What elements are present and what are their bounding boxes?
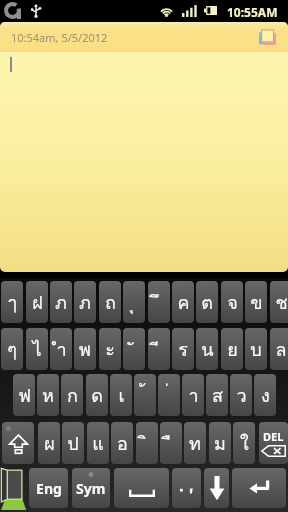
button[interactable]: ้ xyxy=(134,374,156,416)
staticText: Sym xyxy=(76,479,106,498)
button[interactable]: ะ xyxy=(99,328,121,370)
button[interactable]: ฝ xyxy=(26,281,48,323)
button[interactable]: Notes list xyxy=(259,30,276,45)
staticText: ถ xyxy=(105,288,116,317)
staticText: ป xyxy=(67,429,79,458)
button[interactable]: ฟ xyxy=(13,374,35,416)
staticText: ย xyxy=(227,335,238,364)
button[interactable]: ไ xyxy=(26,328,48,370)
button[interactable]: า xyxy=(182,374,204,416)
button[interactable]: ป xyxy=(62,422,84,464)
staticText: DEL xyxy=(263,429,284,444)
staticText: ำ xyxy=(56,335,67,364)
button[interactable]: Period and comma xyxy=(172,468,201,508)
staticText: า xyxy=(188,381,199,410)
staticText: ะ xyxy=(105,335,115,364)
staticText: ด xyxy=(91,381,103,410)
button[interactable]: ช xyxy=(270,281,288,323)
button[interactable]: Eng xyxy=(29,468,68,508)
staticText: ผ xyxy=(44,429,55,458)
button[interactable]: พ xyxy=(74,328,96,370)
button[interactable]: เ xyxy=(110,374,132,416)
staticText: แ xyxy=(92,429,104,458)
button[interactable]: Shift xyxy=(2,422,34,464)
button[interactable]: Space xyxy=(114,468,169,508)
staticText: ๅ xyxy=(8,288,17,317)
button[interactable]: ว xyxy=(230,374,252,416)
staticText: ฝ xyxy=(32,288,43,317)
button[interactable]: ร xyxy=(172,328,194,370)
staticText: ล xyxy=(275,335,287,364)
button[interactable]: น xyxy=(196,328,218,370)
staticText: ท xyxy=(189,429,201,458)
button[interactable]: ม xyxy=(209,422,231,464)
button[interactable]: ภ xyxy=(74,281,96,323)
staticText: ช xyxy=(275,288,288,317)
button[interactable]: Delete xyxy=(259,422,288,464)
button[interactable]: ่ xyxy=(158,374,180,416)
button[interactable]: ั xyxy=(123,328,145,370)
staticText: จ xyxy=(227,288,238,317)
staticText: น xyxy=(201,335,214,364)
button[interactable]: ง xyxy=(254,374,276,416)
button[interactable]: ย xyxy=(221,328,243,370)
button[interactable]: Sym xyxy=(72,468,110,508)
button[interactable]: ๅ xyxy=(1,281,23,323)
staticText: ส xyxy=(212,381,223,410)
staticText: ไ xyxy=(32,335,42,364)
button[interactable]: ส xyxy=(206,374,228,416)
button[interactable]: ถ xyxy=(99,281,121,323)
button[interactable]: ๆ xyxy=(1,328,23,370)
button[interactable]: ภ xyxy=(50,281,72,323)
staticText: ร xyxy=(178,335,188,364)
button[interactable]: ิ xyxy=(136,422,158,464)
staticText: ฟ xyxy=(18,381,31,410)
staticText: ม xyxy=(214,429,226,458)
staticText: พ xyxy=(79,335,91,364)
staticText: ง xyxy=(261,381,270,410)
staticText: 10:55AM xyxy=(227,4,278,20)
staticText: ห xyxy=(42,381,54,410)
button[interactable]: ข xyxy=(245,281,267,323)
staticText: ว xyxy=(236,381,247,410)
button[interactable]: ห xyxy=(37,374,59,416)
button[interactable]: Close keyboard xyxy=(0,468,27,512)
staticText: 10:54am, 5/5/2012 xyxy=(11,30,108,45)
button[interactable]: บ xyxy=(245,328,267,370)
button[interactable]: ผ xyxy=(38,422,60,464)
staticText: เ xyxy=(118,381,125,410)
staticText: Eng xyxy=(36,479,62,498)
staticText: ภ xyxy=(55,288,67,317)
staticText: ๆ xyxy=(7,335,17,364)
button[interactable]: จ xyxy=(221,281,243,323)
button[interactable]: Enter xyxy=(232,468,286,508)
staticText: ภ xyxy=(79,288,91,317)
button[interactable]: Hide keyboard xyxy=(204,468,229,508)
button[interactable]: ต xyxy=(196,281,218,323)
staticText: ต xyxy=(201,288,213,317)
staticText: ค xyxy=(177,288,190,317)
button[interactable]: ล xyxy=(270,328,288,370)
staticText: ก xyxy=(67,381,78,410)
button[interactable]: ท xyxy=(184,422,206,464)
button[interactable]: ก xyxy=(61,374,83,416)
button[interactable]: ด xyxy=(86,374,108,416)
button[interactable]: ื xyxy=(160,422,182,464)
staticText: ข xyxy=(250,288,263,317)
staticText: ใ xyxy=(240,429,249,458)
staticText: อ xyxy=(117,429,128,458)
staticText: บ xyxy=(250,335,262,364)
button[interactable]: ี xyxy=(148,328,170,370)
button[interactable]: ำ xyxy=(50,328,72,370)
button[interactable]: ใ xyxy=(233,422,255,464)
button[interactable]: อ xyxy=(111,422,133,464)
button[interactable]: แ xyxy=(87,422,109,464)
button[interactable]: ึ xyxy=(148,281,170,323)
button[interactable]: ุ xyxy=(123,281,145,323)
button[interactable]: ค xyxy=(172,281,194,323)
